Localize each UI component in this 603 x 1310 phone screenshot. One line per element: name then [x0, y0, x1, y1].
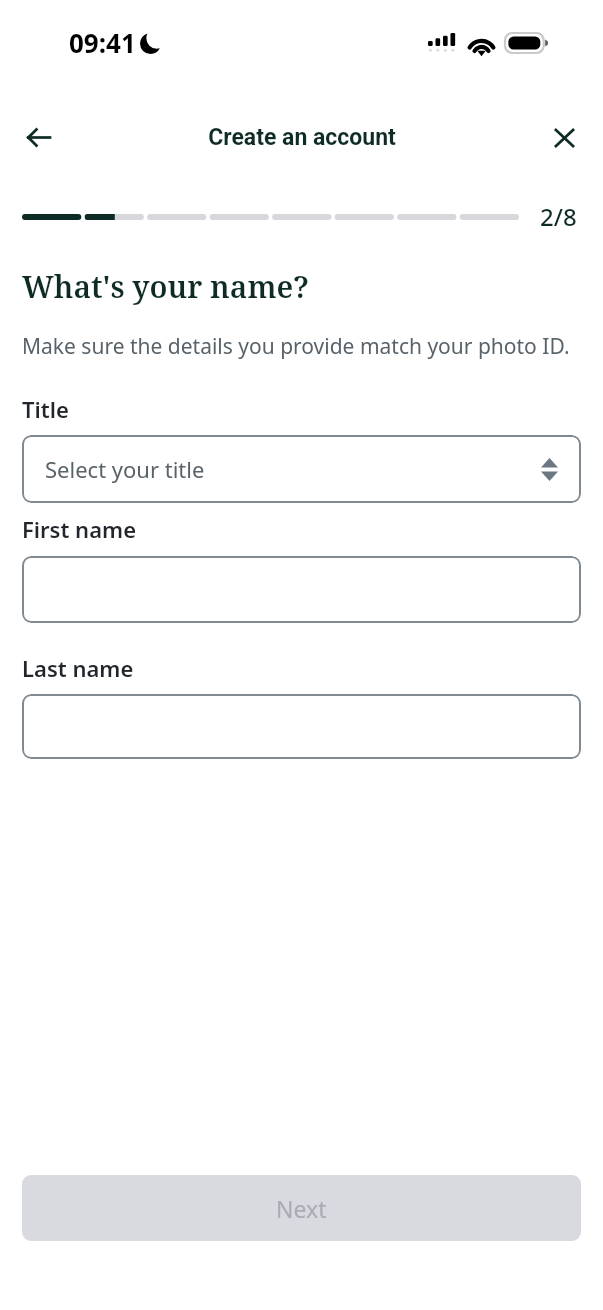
button[interactable]: [22, 556, 581, 623]
staticText: Next: [276, 1193, 327, 1224]
button[interactable]: Next: [22, 1175, 581, 1241]
staticText: 2/8: [540, 200, 577, 233]
staticText: 09:41: [69, 25, 136, 60]
staticText: What's your name?: [22, 266, 309, 307]
staticText: Title: [22, 394, 69, 424]
button[interactable]: Back: [10, 109, 67, 166]
staticText: Make sure the details you provide match …: [22, 332, 570, 361]
button[interactable]: Select your title: [22, 435, 581, 503]
staticText: First name: [22, 514, 137, 544]
staticText: Create an account: [208, 124, 396, 151]
staticText: Last name: [22, 653, 134, 683]
staticText: Select your title: [45, 454, 205, 484]
button[interactable]: Close: [536, 109, 593, 166]
button[interactable]: [22, 694, 581, 759]
